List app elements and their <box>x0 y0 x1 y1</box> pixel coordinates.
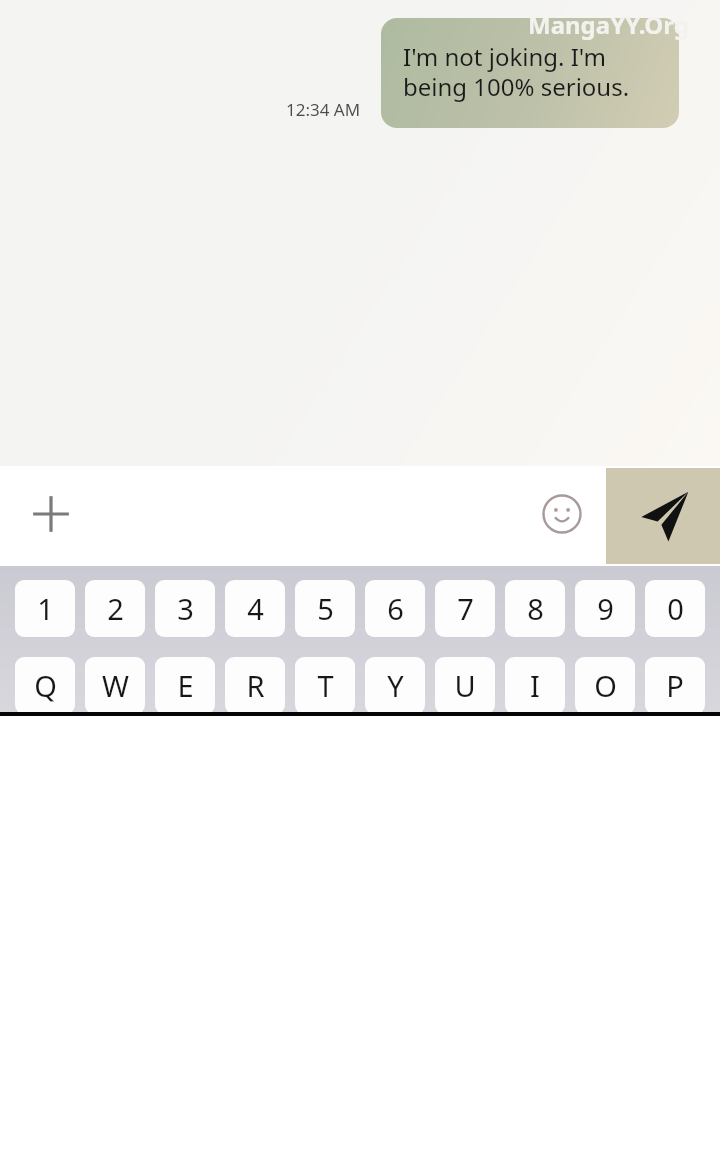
button[interactable]: P <box>645 657 705 714</box>
button[interactable]: Attach <box>18 481 84 547</box>
staticText: 0 <box>667 589 684 628</box>
button[interactable]: I'm not joking. I'm being 100% serious. <box>381 18 679 128</box>
button[interactable]: U <box>435 657 495 714</box>
button[interactable]: 5 <box>295 580 355 637</box>
button[interactable]: 0 <box>645 580 705 637</box>
staticText: 2 <box>107 589 124 628</box>
staticText: 9 <box>597 589 614 628</box>
button[interactable]: 2 <box>85 580 145 637</box>
button[interactable]: 4 <box>225 580 285 637</box>
button[interactable]: E <box>155 657 215 714</box>
staticText: W <box>102 666 129 705</box>
staticText: 5 <box>317 589 334 628</box>
staticText: 4 <box>247 589 264 628</box>
staticText: O <box>594 666 617 705</box>
button[interactable]: 6 <box>365 580 425 637</box>
button[interactable]: 7 <box>435 580 495 637</box>
staticText: R <box>246 666 265 705</box>
button[interactable]: Send <box>606 468 720 564</box>
staticText: 12:34 AM <box>286 98 361 121</box>
staticText: U <box>454 666 476 705</box>
button[interactable]: R <box>225 657 285 714</box>
button[interactable]: 3 <box>155 580 215 637</box>
staticText: 3 <box>177 589 194 628</box>
staticText: 1 <box>37 589 54 628</box>
staticText: Q <box>34 666 57 705</box>
button[interactable]: T <box>295 657 355 714</box>
staticText: 7 <box>457 589 474 628</box>
button[interactable]: Q <box>15 657 75 714</box>
button[interactable]: O <box>575 657 635 714</box>
staticText: I'm not joking. I'm being 100% serious. <box>403 40 630 103</box>
staticText: I <box>530 666 540 705</box>
staticText: T <box>317 666 334 705</box>
button[interactable]: Emoji <box>530 482 594 546</box>
staticText: 8 <box>527 589 544 628</box>
staticText: MangaYY.Org <box>528 8 689 41</box>
button[interactable]: Y <box>365 657 425 714</box>
staticText: E <box>177 666 194 705</box>
staticText: Y <box>387 666 404 705</box>
staticText: 6 <box>387 589 404 628</box>
button[interactable]: W <box>85 657 145 714</box>
button[interactable]: 8 <box>505 580 565 637</box>
button[interactable]: I <box>505 657 565 714</box>
button[interactable]: 9 <box>575 580 635 637</box>
staticText: P <box>666 666 684 705</box>
button[interactable]: 1 <box>15 580 75 637</box>
